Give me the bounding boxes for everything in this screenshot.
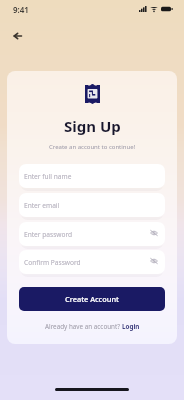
button[interactable]: Back [7,26,27,46]
staticText: Enter email [24,201,60,210]
button[interactable]: Login [122,322,140,331]
staticText: Create Account [65,294,119,304]
button[interactable]: Enter password [19,222,165,246]
button[interactable]: Toggle password visibility [150,229,158,237]
staticText: 9:41 [13,4,29,15]
staticText: Create an account to continue! [49,143,136,151]
staticText: Enter password [24,230,73,239]
staticText: Sign Up [64,116,121,136]
staticText: Already have an account? [45,322,122,331]
button[interactable]: Toggle password visibility [150,257,158,265]
button[interactable]: Confirm Password [19,250,165,274]
staticText: Enter full name [24,172,72,181]
staticText: Login [122,322,140,331]
button[interactable]: Enter full name [19,164,165,188]
button[interactable]: Create Account [19,287,165,311]
staticText: Confirm Password [24,258,81,267]
button[interactable]: Enter email [19,193,165,217]
